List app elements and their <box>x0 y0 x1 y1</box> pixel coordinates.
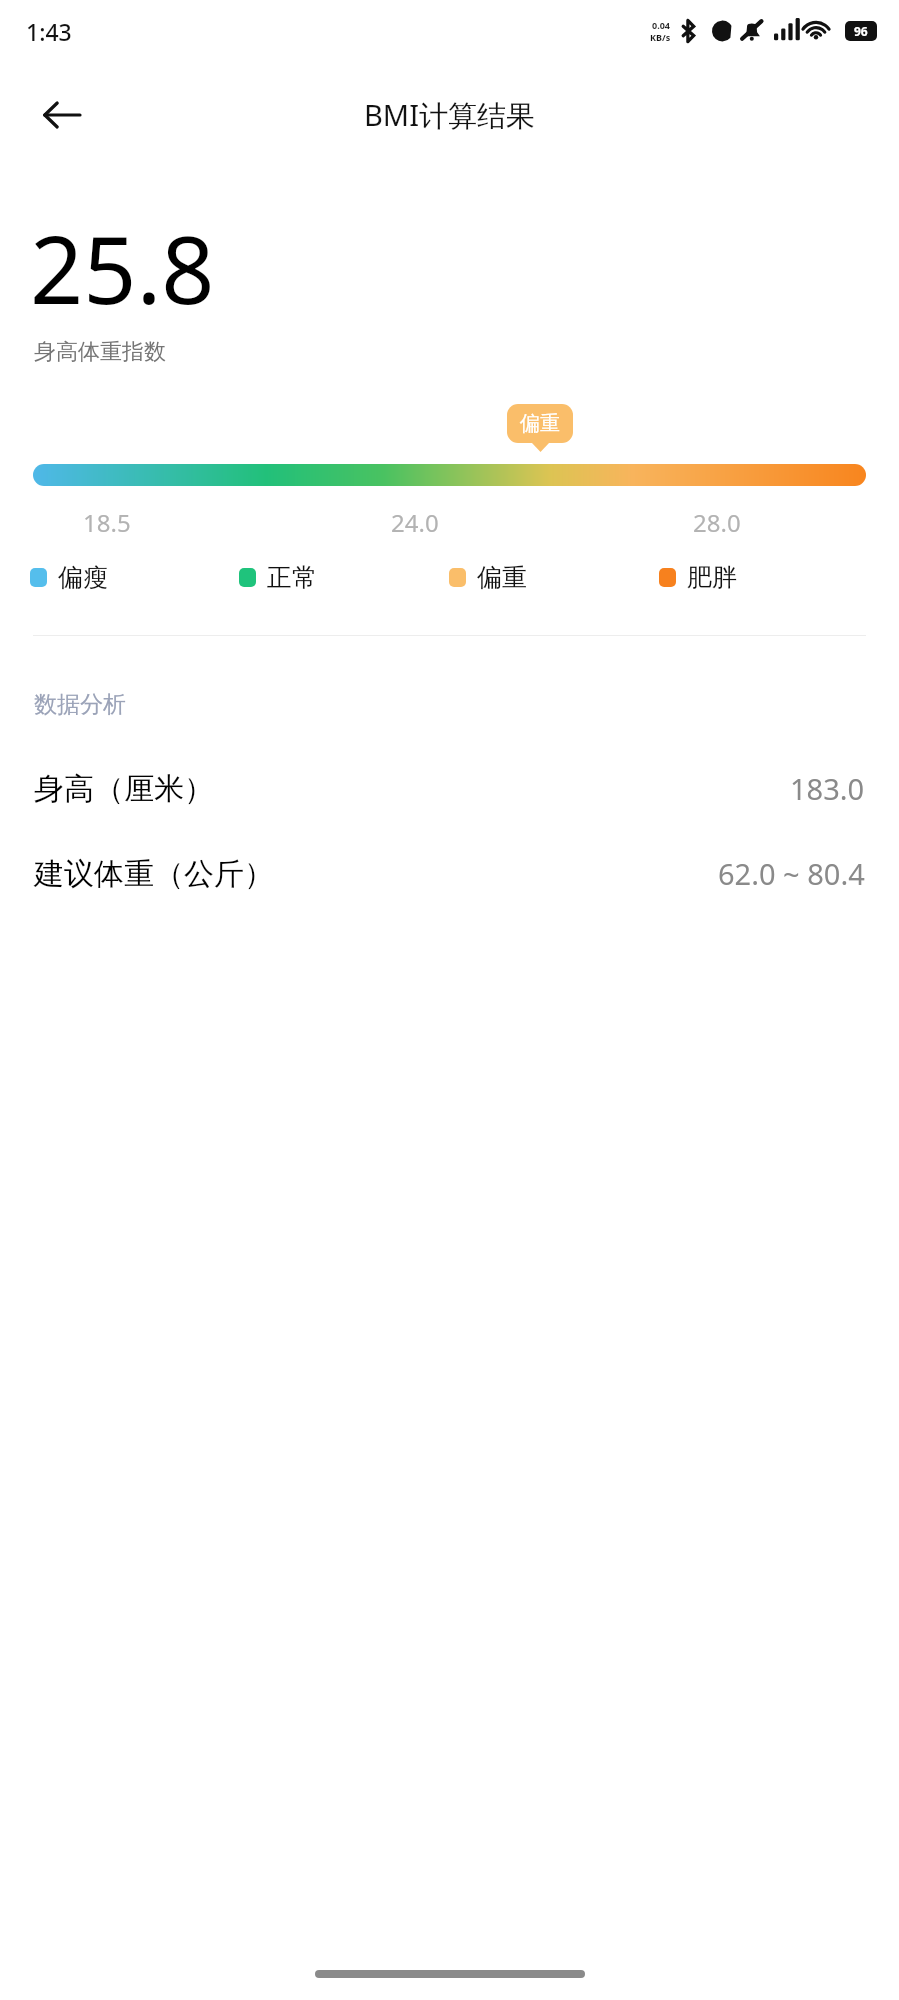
staticText: 96 <box>854 23 868 39</box>
staticText: 身高（厘米） <box>34 770 214 808</box>
staticText: 身高体重指数 <box>34 338 166 366</box>
button[interactable]: 身高（厘米） <box>0 759 899 818</box>
button[interactable]: 建议体重（公斤） <box>0 844 899 903</box>
staticText: 数据分析 <box>34 690 126 719</box>
staticText: 偏重 <box>520 411 560 436</box>
staticText: 183.0 <box>790 769 865 808</box>
staticText: 偏重 <box>477 562 527 593</box>
staticText: 正常 <box>267 562 317 593</box>
staticText: 18.5 <box>83 506 131 539</box>
staticText: 偏瘦 <box>58 562 108 593</box>
button[interactable]: 肥胖 <box>659 562 869 593</box>
staticText: 25.8 <box>30 205 215 332</box>
button[interactable]: Back <box>34 87 90 143</box>
staticText: 28.0 <box>693 506 741 539</box>
staticText: 建议体重（公斤） <box>34 855 274 893</box>
button[interactable]: 正常 <box>239 562 449 593</box>
staticText: 1:43 <box>26 16 72 47</box>
staticText: 62.0 ~ 80.4 <box>718 854 865 893</box>
staticText: 肥胖 <box>687 562 737 593</box>
staticText: 0.04 <box>652 19 670 31</box>
button[interactable]: 偏重 <box>449 562 659 593</box>
staticText: 24.0 <box>391 506 439 539</box>
staticText: BMI计算结果 <box>364 95 535 135</box>
staticText: KB/s <box>650 31 671 43</box>
button[interactable]: 偏瘦 <box>30 562 239 593</box>
